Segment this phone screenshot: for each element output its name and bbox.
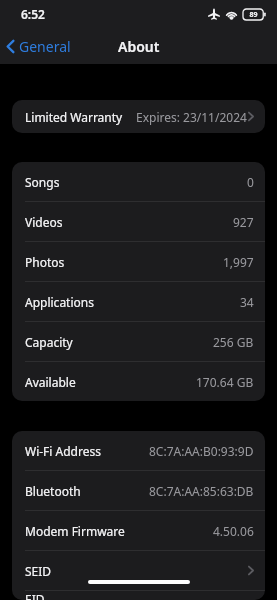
staticText: Videos <box>25 214 63 230</box>
staticText: General <box>19 37 71 56</box>
staticText: 927 <box>233 214 254 230</box>
button[interactable]: Limited Warranty <box>12 100 265 133</box>
button[interactable]: Capacity <box>12 322 265 361</box>
staticText: Applications <box>25 294 94 310</box>
button[interactable]: Applications <box>12 282 265 321</box>
button[interactable]: Wi-Fi Address <box>12 431 265 470</box>
staticText: Bluetooth <box>25 483 81 499</box>
staticText: 8C:7A:AA:B0:93:9D <box>149 443 254 459</box>
button[interactable]: Photos <box>12 242 265 281</box>
staticText: Songs <box>25 174 60 190</box>
button[interactable]: General <box>0 32 81 61</box>
staticText: 256 GB <box>213 334 254 350</box>
staticText: 6:52 <box>21 6 45 22</box>
staticText: EID <box>25 591 45 600</box>
staticText: Modem Firmware <box>25 523 125 539</box>
staticText: Available <box>25 374 76 390</box>
staticText: 34 <box>240 294 254 310</box>
staticText: About <box>118 37 160 56</box>
button[interactable]: SEID <box>12 551 265 590</box>
button[interactable]: Bluetooth <box>12 471 265 510</box>
staticText: Photos <box>25 254 65 270</box>
staticText: Capacity <box>25 334 73 350</box>
staticText: Wi-Fi Address <box>25 443 101 459</box>
staticText: 170.64 GB <box>196 374 254 390</box>
button[interactable]: Available <box>12 362 265 401</box>
staticText: SEID <box>25 563 52 579</box>
staticText: 4.50.06 <box>213 523 254 539</box>
staticText: 89 <box>249 10 258 20</box>
staticText: 1,997 <box>223 254 254 270</box>
button[interactable]: Songs <box>12 162 265 201</box>
button[interactable]: EID <box>12 591 265 600</box>
button[interactable]: Videos <box>12 202 265 241</box>
staticText: Limited Warranty <box>25 109 123 125</box>
staticText: 0 <box>247 174 254 190</box>
staticText: 8C:7A:AA:85:63:DB <box>149 483 254 499</box>
button[interactable]: Modem Firmware <box>12 511 265 550</box>
staticText: Expires: 23/11/2024 <box>136 109 247 125</box>
